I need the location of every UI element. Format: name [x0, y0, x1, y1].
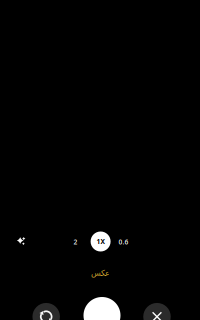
- staticText: 0.6: [118, 238, 128, 246]
- button[interactable]: Flip Camera: [32, 303, 60, 320]
- staticText: 2: [73, 238, 77, 246]
- button[interactable]: 2: [66, 233, 84, 251]
- button[interactable]: Close: [143, 303, 171, 320]
- staticText: عکس: [90, 268, 109, 278]
- button[interactable]: Photographic Styles: [9, 229, 33, 253]
- staticText: 1X: [97, 237, 105, 246]
- button[interactable]: Shutter: [83, 297, 120, 320]
- button[interactable]: 1X: [91, 231, 111, 251]
- button[interactable]: 0.6: [113, 233, 133, 251]
